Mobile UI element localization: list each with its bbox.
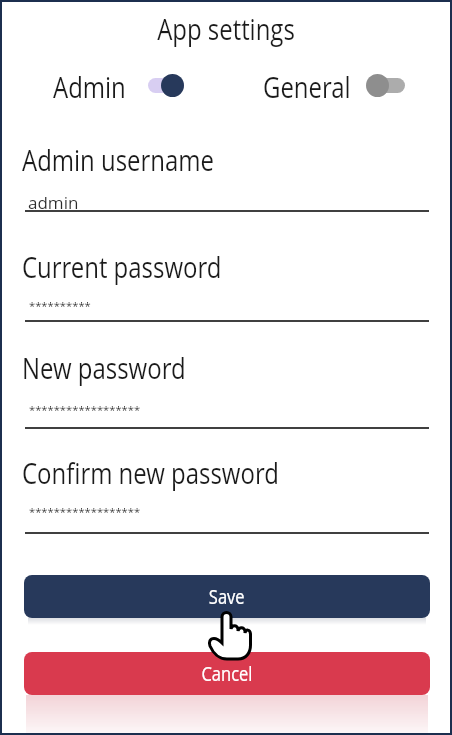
staticText: General: [263, 67, 351, 106]
staticText: Save: [209, 583, 245, 610]
staticText: admin: [28, 191, 79, 214]
staticText: Cancel: [201, 660, 252, 687]
button[interactable]: [25, 184, 429, 212]
staticText: **********: [29, 298, 91, 313]
staticText: ******************: [29, 504, 141, 519]
staticText: Admin username: [22, 140, 214, 179]
button[interactable]: [148, 78, 184, 93]
staticText: Current password: [22, 247, 222, 286]
staticText: App settings: [40, 9, 412, 48]
staticText: Admin: [53, 67, 126, 106]
button[interactable]: [25, 292, 429, 322]
staticText: Confirm new password: [22, 453, 279, 492]
button[interactable]: Cancel: [24, 652, 430, 695]
staticText: New password: [22, 348, 186, 387]
button[interactable]: Save: [24, 575, 430, 618]
button[interactable]: [25, 503, 429, 534]
button[interactable]: [367, 78, 405, 93]
staticText: ******************: [29, 402, 141, 417]
button[interactable]: [25, 398, 429, 429]
